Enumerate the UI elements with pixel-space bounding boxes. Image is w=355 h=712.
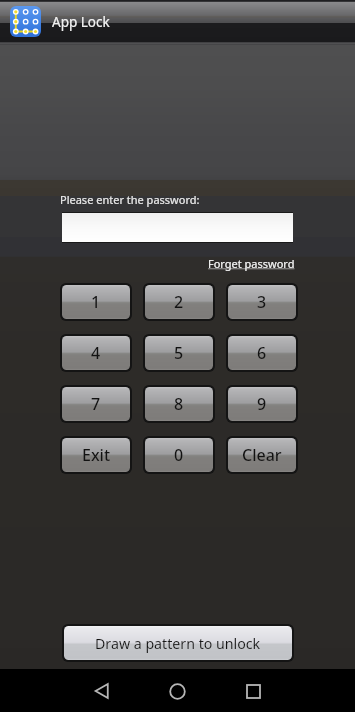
staticText: Draw a pattern to unlock: [95, 634, 261, 653]
staticText: App Lock: [52, 13, 110, 31]
staticText: 3: [257, 291, 267, 313]
staticText: 9: [257, 393, 267, 415]
staticText: 6: [257, 342, 267, 364]
staticText: 4: [91, 342, 101, 364]
button[interactable]: 5: [145, 336, 213, 370]
button[interactable]: Draw a pattern to unlock: [64, 626, 292, 660]
button[interactable]: 3: [228, 285, 296, 319]
staticText: 0: [174, 444, 184, 466]
button[interactable]: 1: [62, 285, 130, 319]
button[interactable]: 9: [228, 387, 296, 421]
button[interactable]: Back: [85, 674, 119, 708]
staticText: Clear: [242, 444, 282, 466]
staticText: 5: [174, 342, 184, 364]
staticText: Forget password: [208, 256, 295, 271]
staticText: Please enter the password:: [60, 192, 200, 207]
button[interactable]: 4: [62, 336, 130, 370]
button[interactable]: App Lock: [10, 6, 41, 37]
staticText: 8: [174, 393, 184, 415]
button[interactable]: 6: [228, 336, 296, 370]
staticText: 2: [174, 291, 184, 313]
staticText: 1: [91, 291, 101, 313]
button[interactable]: [62, 213, 293, 242]
button[interactable]: Exit: [62, 438, 130, 472]
staticText: 7: [91, 393, 101, 415]
button[interactable]: 7: [62, 387, 130, 421]
button[interactable]: Recents: [236, 674, 270, 708]
button[interactable]: 2: [145, 285, 213, 319]
button[interactable]: 8: [145, 387, 213, 421]
button[interactable]: Clear: [228, 438, 296, 472]
staticText: Exit: [82, 444, 111, 466]
button[interactable]: 0: [145, 438, 213, 472]
button[interactable]: Home: [160, 674, 194, 708]
button[interactable]: Forget password: [208, 256, 295, 271]
